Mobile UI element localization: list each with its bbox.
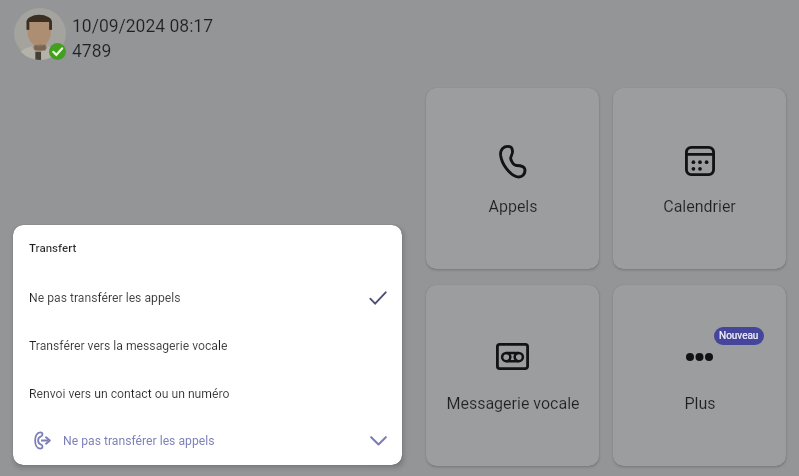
button[interactable]: Plus bbox=[613, 285, 786, 466]
staticText: Messagerie vocale bbox=[446, 394, 580, 413]
staticText: Ne pas transférer les appels bbox=[63, 434, 215, 448]
staticText: 10/09/2024 08:17 bbox=[72, 16, 214, 37]
other: Appels bbox=[499, 145, 526, 178]
button[interactable]: Transférer vers la messagerie vocale bbox=[13, 322, 402, 370]
staticText: Plus bbox=[684, 394, 716, 413]
other: Expand bbox=[370, 436, 387, 446]
other: Messagerie vocale bbox=[496, 343, 529, 370]
button[interactable]: Calendrier bbox=[613, 88, 786, 269]
button[interactable]: Ne pas transférer les appels bbox=[13, 274, 402, 322]
staticText: Appels bbox=[488, 197, 538, 216]
button[interactable]: Ne pas transférer les appels bbox=[13, 416, 402, 465]
staticText: Calendrier bbox=[663, 197, 736, 216]
staticText: Ne pas transférer les appels bbox=[29, 291, 181, 305]
staticText: Transférer vers la messagerie vocale bbox=[29, 339, 228, 353]
staticText: Transfert bbox=[29, 241, 77, 254]
button[interactable]: Messagerie vocale bbox=[426, 285, 599, 466]
staticText: 4789 bbox=[72, 41, 112, 62]
other: Sélectionné bbox=[369, 291, 387, 305]
staticText: Nouveau bbox=[719, 330, 759, 342]
button[interactable]: Profil utilisateur bbox=[14, 8, 66, 60]
button[interactable]: Renvoi vers un contact ou un numéro bbox=[13, 370, 402, 418]
button[interactable]: Appels bbox=[426, 88, 599, 269]
other: Calendrier bbox=[685, 146, 715, 176]
other: Plus bbox=[686, 353, 713, 361]
staticText: Renvoi vers un contact ou un numéro bbox=[29, 387, 230, 401]
